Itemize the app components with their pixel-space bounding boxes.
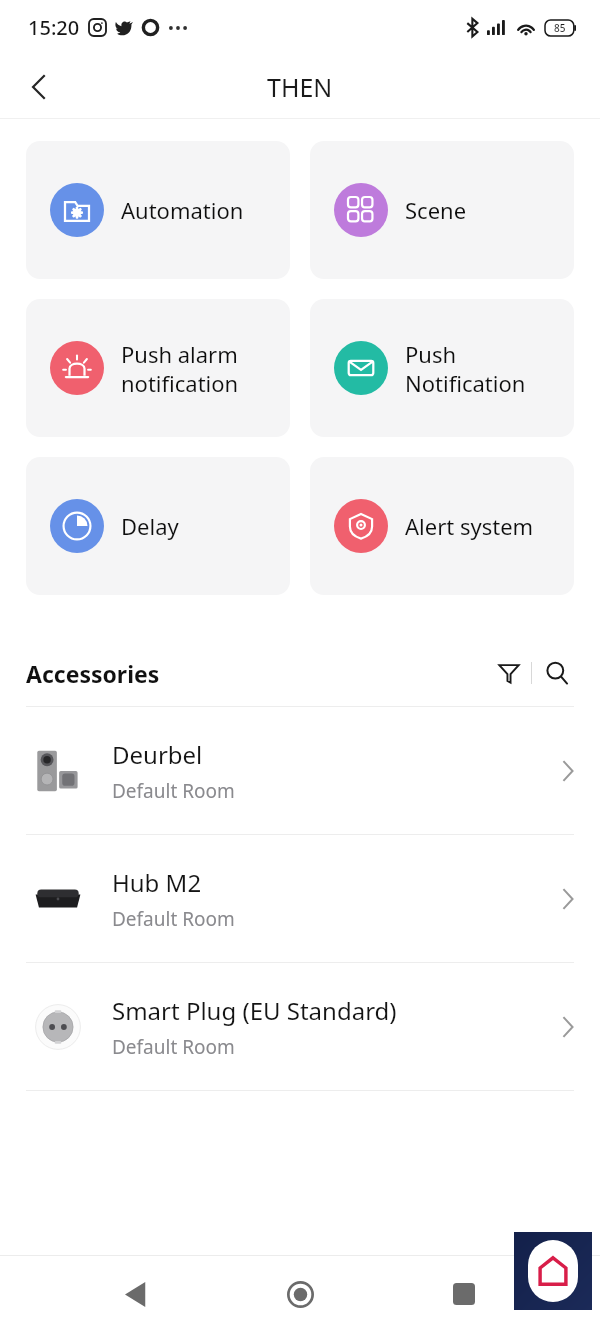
staticText: Hub M2	[112, 866, 202, 899]
button[interactable]: Filter	[487, 651, 531, 695]
button[interactable]: Push alarm notification	[26, 299, 290, 437]
staticText: Default Room	[112, 778, 235, 804]
button[interactable]: Scene	[310, 141, 574, 279]
button[interactable]: Hub M2	[0, 835, 600, 963]
button[interactable]: Automation	[26, 141, 290, 279]
button[interactable]: Delay	[26, 457, 290, 595]
staticText: Default Room	[112, 1034, 235, 1060]
button[interactable]: Home	[272, 1266, 328, 1322]
button[interactable]: Back	[108, 1266, 164, 1322]
button[interactable]: Push Notification	[310, 299, 574, 437]
button[interactable]: Back	[14, 63, 62, 111]
staticText: 85	[554, 21, 566, 35]
button[interactable]: Recent apps	[436, 1266, 492, 1322]
staticText: THEN	[267, 70, 333, 104]
staticText: Accessories	[26, 658, 160, 689]
staticText: Automation	[121, 195, 244, 225]
button[interactable]: Alert system	[310, 457, 574, 595]
staticText: Alert system	[405, 511, 534, 541]
staticText: Deurbel	[112, 738, 203, 771]
staticText: Scene	[405, 195, 467, 225]
button[interactable]: Home app shortcut	[514, 1232, 592, 1310]
staticText: 15:20	[28, 14, 80, 41]
button[interactable]: Deurbel	[0, 707, 600, 835]
staticText: Default Room	[112, 906, 235, 932]
staticText: Push alarm notification	[121, 339, 239, 398]
button[interactable]: Smart Plug (EU Standard)	[0, 963, 600, 1091]
staticText: Push Notification	[405, 339, 526, 398]
button[interactable]: Search	[532, 648, 582, 698]
staticText: Delay	[121, 511, 179, 541]
staticText: Smart Plug (EU Standard)	[112, 994, 397, 1027]
